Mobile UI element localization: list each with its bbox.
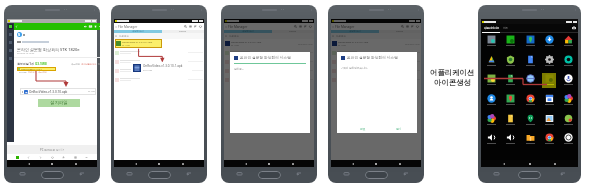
button[interactable]: App 5: [559, 34, 577, 54]
button[interactable]: Action: [294, 25, 297, 28]
button[interactable]: Home: [50, 162, 54, 166]
button[interactable]: [332, 57, 421, 66]
button[interactable]: Back: [351, 162, 355, 166]
button[interactable]: Action: [299, 25, 302, 28]
button[interactable]: Device: [272, 30, 314, 33]
button[interactable]: Back: [296, 172, 301, 176]
button[interactable]: App 20: [559, 93, 577, 113]
button[interactable]: Home: [528, 162, 532, 166]
button[interactable]: App 29: [540, 132, 558, 152]
button[interactable]: Action: [194, 25, 197, 28]
button[interactable]: Recents: [237, 172, 242, 176]
button[interactable]: Recents: [291, 162, 295, 166]
button[interactable]: Play Store: [572, 26, 576, 30]
button[interactable]: Home: [157, 162, 161, 166]
button[interactable]: Recents: [344, 172, 349, 176]
button[interactable]: App 7: [501, 54, 519, 74]
button[interactable]: App 25: [559, 113, 577, 133]
button[interactable]: [332, 75, 421, 84]
button[interactable]: App 24: [540, 113, 558, 133]
button[interactable]: 내장메모리: [114, 30, 162, 33]
button[interactable]: App 22: [501, 113, 519, 133]
button[interactable]: Device: [379, 30, 421, 33]
button[interactable]: App 13: [521, 73, 539, 93]
button[interactable]: [225, 75, 314, 84]
button[interactable]: App 6: [482, 54, 500, 74]
button[interactable]: App 12: [501, 73, 519, 93]
button[interactable]: Home: [267, 162, 271, 166]
button[interactable]: Tool: [51, 156, 54, 159]
button[interactable]: 설치파일: [38, 99, 80, 107]
button[interactable]: Recents: [181, 162, 185, 166]
button[interactable]: Recents: [20, 172, 25, 176]
button[interactable]: App 14: [540, 73, 558, 93]
button[interactable]: 열기: [393, 124, 405, 133]
button[interactable]: App 9: [540, 54, 558, 74]
button[interactable]: Back: [244, 162, 248, 166]
button[interactable]: App 28: [521, 132, 539, 152]
button[interactable]: Action: [89, 25, 92, 28]
button[interactable]: Action: [84, 25, 87, 28]
button[interactable]: Action: [189, 25, 192, 28]
button[interactable]: OnRocVideo-v1.3.0.10.apk: [20, 88, 96, 95]
button[interactable]: Action: [406, 25, 409, 28]
button[interactable]: App 1: [482, 34, 500, 54]
button[interactable]: OnRocVideo-v1.3.0.10-1.apk: [332, 39, 421, 48]
button[interactable]: Action: [309, 25, 312, 28]
button[interactable]: [332, 48, 421, 57]
button[interactable]: App 19: [540, 93, 558, 113]
button[interactable]: OnRocVideo-v1.3.0.1: [17, 67, 56, 71]
button[interactable]: App 4: [540, 34, 558, 54]
button[interactable]: Action: [99, 25, 100, 28]
button[interactable]: Recents: [398, 162, 402, 166]
button[interactable]: OnRocVideo-v1.3.0.10-1.apk: [131, 62, 192, 73]
button[interactable]: App 15: [559, 73, 577, 93]
button[interactable]: [225, 57, 314, 66]
button[interactable]: App 8: [521, 54, 539, 74]
button[interactable]: Back: [79, 172, 84, 176]
button[interactable]: [332, 66, 421, 75]
button[interactable]: Back: [134, 162, 138, 166]
button[interactable]: Recents: [74, 162, 78, 166]
button[interactable]: 완료: [357, 124, 369, 133]
button[interactable]: Tool: [62, 156, 65, 159]
button[interactable]: App 26: [482, 132, 500, 152]
button[interactable]: [115, 48, 204, 57]
button[interactable]: 애플리케이션: [482, 27, 500, 30]
button[interactable]: Tool: [39, 156, 42, 159]
button[interactable]: OnRocVideo-v1.3.0.10-1.apk: [225, 39, 314, 48]
button[interactable]: Action: [94, 25, 97, 28]
button[interactable]: Back: [403, 172, 408, 176]
button[interactable]: Back: [15, 25, 18, 28]
button[interactable]: App 11: [482, 73, 500, 93]
button[interactable]: Back: [27, 162, 31, 166]
button[interactable]: Tool: [74, 156, 77, 159]
button[interactable]: Home: [374, 162, 378, 166]
button[interactable]: [115, 66, 204, 75]
button[interactable]: Action: [199, 25, 202, 28]
button[interactable]: [225, 66, 314, 75]
button[interactable]: App 30: [559, 132, 577, 152]
button[interactable]: 내장메모리: [331, 30, 379, 33]
button[interactable]: Recents: [494, 172, 499, 176]
button[interactable]: App 17: [501, 93, 519, 113]
button[interactable]: Tool: [27, 156, 30, 159]
button[interactable]: Recents: [553, 162, 557, 166]
button[interactable]: App 2: [501, 34, 519, 54]
button[interactable]: App 16: [482, 93, 500, 113]
button[interactable]: [115, 57, 204, 66]
button[interactable]: Action: [401, 25, 404, 28]
button[interactable]: Back: [186, 172, 191, 176]
button[interactable]: App 21: [482, 113, 500, 133]
button[interactable]: Action: [304, 25, 307, 28]
button[interactable]: Mail: [8, 24, 13, 29]
button[interactable]: Device: [162, 30, 204, 33]
button[interactable]: [115, 75, 204, 84]
button[interactable]: More: [85, 156, 88, 159]
button[interactable]: Back: [560, 172, 565, 176]
button[interactable]: OnRocVideo-v1.3.0.10-1.apk: [115, 39, 162, 48]
